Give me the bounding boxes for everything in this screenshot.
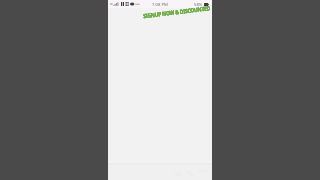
staticText: 58% xyxy=(194,2,203,8)
button[interactable]: SIGNUP NOW & DISCOUNTED xyxy=(143,4,211,21)
staticText: SIGNUP NOW & DISCOUNTED xyxy=(143,4,211,21)
staticText: SIGNUP NOW & DISCOUNTED xyxy=(143,4,211,21)
staticText: SIGNUP NOW & DISCOUNTED xyxy=(143,4,211,21)
staticText: SIGNUP NOW & DISCOUNTED xyxy=(143,4,211,21)
other: Status bar xyxy=(108,0,212,8)
other: Battery xyxy=(204,3,209,6)
staticText: SIGNUP NOW & DISCOUNTED xyxy=(143,4,211,21)
staticText: 7:08 PM xyxy=(152,2,168,8)
